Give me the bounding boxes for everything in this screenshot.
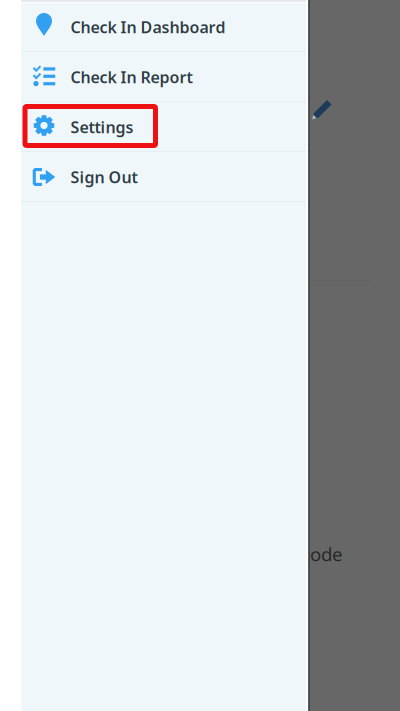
staticText: Check In Dashboard bbox=[70, 16, 225, 38]
staticText: Settings bbox=[70, 116, 133, 138]
button[interactable]: Settings bbox=[21, 102, 306, 152]
staticText: Sign Out bbox=[70, 166, 137, 188]
staticText: code bbox=[301, 541, 343, 566]
staticText: Check In Report bbox=[70, 66, 192, 88]
button[interactable]: Sign Out bbox=[21, 152, 306, 202]
button[interactable]: Check In Dashboard bbox=[21, 2, 306, 52]
button[interactable]: Check In Report bbox=[21, 52, 306, 102]
